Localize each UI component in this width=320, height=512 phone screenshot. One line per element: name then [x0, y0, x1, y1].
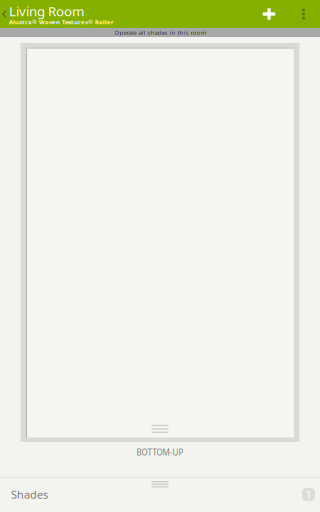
button[interactable]: Shades	[0, 477, 320, 512]
button[interactable]: Back	[0, 0, 9, 28]
button[interactable]: Operate all shades in this room	[0, 28, 320, 37]
staticText: BOTTOM-UP	[136, 447, 183, 458]
staticText: 1	[305, 487, 311, 502]
staticText: Alustra® Woven Textures® Roller	[9, 18, 114, 26]
button[interactable]: More options	[287, 0, 320, 28]
button[interactable]: Add shade	[251, 0, 287, 28]
staticText: Living Room	[9, 2, 84, 20]
staticText: Shades	[11, 487, 48, 502]
staticText: Operate all shades in this room	[114, 28, 205, 36]
